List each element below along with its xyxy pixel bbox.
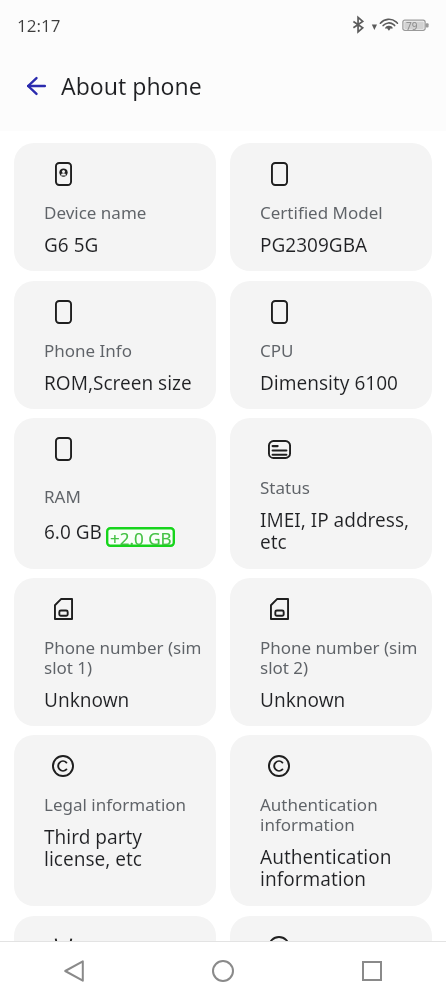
staticText: 12:17 xyxy=(17,14,61,37)
staticText: RAM xyxy=(44,485,81,508)
button[interactable]: Device info xyxy=(230,916,432,1000)
staticText: About phone xyxy=(61,70,202,101)
button[interactable]: Back xyxy=(0,942,148,1000)
staticText: Third party license, etc xyxy=(44,824,208,872)
staticText: 79 xyxy=(406,19,418,33)
staticText: +2.0 GB xyxy=(110,527,172,547)
button[interactable]: Home xyxy=(148,942,297,1000)
staticText: PG2309GBA xyxy=(260,232,368,258)
staticText: Experience xyxy=(44,974,132,997)
staticText: ROM,Screen size xyxy=(44,370,192,396)
staticText: Authentication information xyxy=(260,793,424,836)
staticText: IMEI, IP address, etc xyxy=(260,507,424,555)
staticText: Dimensity 6100 xyxy=(260,370,398,396)
button[interactable]: CPU xyxy=(230,281,432,409)
button[interactable]: Device name xyxy=(14,143,216,271)
staticText: Phone number (sim slot 2) xyxy=(260,636,424,679)
staticText: Device name xyxy=(44,201,147,224)
staticText: Legal information xyxy=(44,793,187,816)
staticText: Authentication information xyxy=(260,844,424,892)
staticText: CPU xyxy=(260,339,294,362)
staticText: Certified Model xyxy=(260,201,383,224)
staticText: Phone number (sim slot 1) xyxy=(44,636,208,679)
staticText: G6 5G xyxy=(44,232,99,258)
button[interactable]: Certified Model xyxy=(230,143,432,271)
staticText: 6.0 GB xyxy=(44,519,102,545)
staticText: Unknown xyxy=(260,687,346,713)
staticText: Status xyxy=(260,476,310,499)
button[interactable]: Legal information xyxy=(14,735,216,906)
button[interactable]: Recent apps xyxy=(297,942,446,1000)
button[interactable]: Experience xyxy=(14,916,216,1000)
button[interactable]: RAM xyxy=(14,418,216,569)
button[interactable]: Back xyxy=(10,62,58,110)
button[interactable]: Phone Info xyxy=(14,281,216,409)
button[interactable]: Status xyxy=(230,418,432,569)
button[interactable]: Phone number (sim slot 2) xyxy=(230,578,432,726)
button[interactable]: Phone number (sim slot 1) xyxy=(14,578,216,726)
staticText: Unknown xyxy=(44,687,130,713)
staticText: Phone Info xyxy=(44,339,132,362)
button[interactable]: Authentication information xyxy=(230,735,432,906)
